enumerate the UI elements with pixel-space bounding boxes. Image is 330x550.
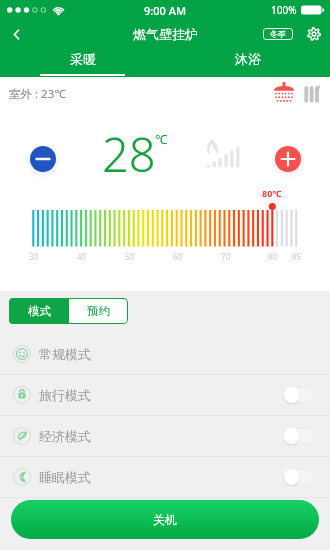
staticText: 60 bbox=[173, 251, 183, 262]
button[interactable]: Toggle 旅行模式 bbox=[283, 386, 315, 404]
staticText: 模式 bbox=[28, 304, 51, 318]
button[interactable]: 模式 bbox=[9, 298, 69, 324]
staticText: 85 bbox=[292, 251, 302, 262]
button[interactable]: 关机 bbox=[11, 500, 319, 539]
staticText: 冬季 bbox=[270, 29, 286, 39]
button[interactable]: Decrease temperature bbox=[25, 141, 61, 177]
staticText: 80℃ bbox=[262, 187, 282, 199]
button[interactable]: 经济模式 bbox=[0, 416, 330, 456]
staticText: 预约 bbox=[87, 304, 110, 318]
staticText: 50 bbox=[125, 251, 135, 262]
button[interactable]: Toggle 经济模式 bbox=[283, 427, 315, 445]
staticText: 70 bbox=[221, 251, 231, 262]
button[interactable]: Increase temperature bbox=[270, 141, 306, 177]
staticText: 沐浴 bbox=[235, 51, 261, 67]
button[interactable]: 采暖 bbox=[0, 48, 165, 77]
button[interactable]: 冬季 bbox=[263, 28, 293, 40]
staticText: 100% bbox=[271, 3, 297, 17]
staticText: 燃气壁挂炉 bbox=[133, 26, 198, 42]
button[interactable]: Back bbox=[0, 20, 32, 48]
staticText: 采暖 bbox=[70, 51, 96, 67]
button[interactable]: 旅行模式 bbox=[0, 375, 330, 415]
staticText: 旅行模式 bbox=[39, 387, 91, 403]
button[interactable]: 沐浴 bbox=[165, 48, 330, 77]
staticText: ℃ bbox=[155, 131, 168, 148]
button[interactable]: 常规模式 bbox=[0, 334, 330, 374]
staticText: 经济模式 bbox=[39, 428, 91, 444]
staticText: 关机 bbox=[153, 512, 177, 527]
staticText: 室外 : 23℃ bbox=[9, 86, 66, 102]
staticText: 常规模式 bbox=[39, 346, 91, 362]
button[interactable]: Toggle 睡眠模式 bbox=[283, 468, 315, 486]
staticText: 80 bbox=[268, 251, 278, 262]
staticText: 9:00 AM bbox=[144, 3, 187, 18]
staticText: 睡眠模式 bbox=[39, 469, 91, 485]
button[interactable]: 预约 bbox=[69, 298, 128, 324]
staticText: 40 bbox=[77, 251, 87, 262]
button[interactable]: Settings bbox=[305, 25, 323, 43]
button[interactable]: 睡眠模式 bbox=[0, 457, 330, 497]
staticText: 28 bbox=[102, 122, 156, 186]
staticText: 30 bbox=[29, 251, 39, 262]
